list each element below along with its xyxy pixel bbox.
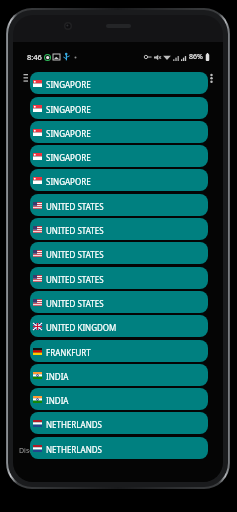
staticText: SINGAPORE	[46, 128, 91, 139]
button[interactable]: Menu	[18, 70, 33, 84]
button[interactable]: UNITED STATES	[30, 194, 208, 216]
staticText: SINGAPORE	[46, 176, 91, 187]
button[interactable]: SINGAPORE	[30, 121, 208, 143]
staticText: SINGAPORE	[46, 104, 91, 115]
button[interactable]: INDIA	[30, 364, 208, 386]
staticText: UNITED KINGDOM	[46, 322, 117, 333]
staticText: 8:46	[27, 52, 42, 62]
button[interactable]: UNITED STATES	[30, 267, 208, 289]
button[interactable]: UNITED KINGDOM	[30, 315, 208, 337]
button[interactable]: SINGAPORE	[30, 169, 208, 191]
staticText: SINGAPORE	[46, 152, 91, 163]
staticText: UNITED STATES	[46, 201, 104, 212]
staticText: UNITED STATES	[46, 249, 104, 260]
button[interactable]: NETHERLANDS	[30, 412, 208, 434]
staticText: UNITED STATES	[46, 274, 104, 285]
button[interactable]: UNITED STATES	[30, 242, 208, 264]
button[interactable]: UNITED STATES	[30, 218, 208, 240]
button[interactable]: More options	[204, 68, 219, 86]
staticText: NETHERLANDS	[46, 419, 102, 430]
button[interactable]: SINGAPORE	[30, 97, 208, 119]
staticText: FRANKFURT	[46, 347, 91, 358]
staticText: INDIA	[46, 371, 69, 382]
button[interactable]: SINGAPORE	[30, 72, 208, 94]
staticText: INDIA	[46, 395, 69, 406]
button[interactable]: FRANKFURT	[30, 340, 208, 362]
button[interactable]: NETHERLANDS	[30, 437, 208, 459]
staticText: UNITED STATES	[46, 298, 104, 309]
staticText: SINGAPORE	[46, 79, 91, 90]
button[interactable]: UNITED STATES	[30, 291, 208, 313]
button[interactable]: SINGAPORE	[30, 145, 208, 167]
staticText: NETHERLANDS	[46, 444, 102, 455]
staticText: UNITED STATES	[46, 225, 104, 236]
staticText: Disconnect	[19, 446, 56, 456]
button[interactable]: Disconnect	[19, 446, 56, 456]
staticText: 86%	[189, 52, 203, 62]
button[interactable]: INDIA	[30, 388, 208, 410]
